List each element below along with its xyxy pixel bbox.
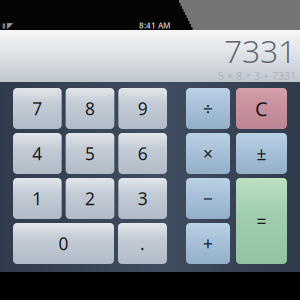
button[interactable]: 4 [13, 133, 62, 174]
button[interactable]: 5 [66, 133, 114, 174]
staticText: 4 [32, 142, 42, 165]
staticText: 9 [138, 97, 148, 120]
staticText: = [256, 209, 266, 232]
staticText: 5 × 8 ÷ 3 + 7331 [218, 68, 296, 83]
staticText: 8 [85, 97, 95, 120]
staticText: 7331 [224, 29, 296, 72]
staticText: + [203, 232, 213, 255]
staticText: ◤ [7, 21, 13, 30]
staticText: 2 [85, 187, 95, 210]
staticText: ÷ [203, 97, 213, 120]
button[interactable]: 1 [13, 178, 62, 219]
button[interactable]: 3 [118, 178, 167, 219]
button[interactable]: 0 [13, 223, 114, 264]
staticText: 5 [85, 142, 95, 165]
button[interactable]: = [236, 178, 287, 264]
button[interactable]: ± [236, 133, 287, 174]
staticText: 8:41 AM [139, 20, 170, 31]
staticText: . [140, 232, 145, 255]
button[interactable]: + [186, 223, 230, 264]
staticText: 7 [32, 97, 42, 120]
button[interactable]: 8 [66, 88, 114, 129]
staticText: ± [256, 142, 266, 165]
button[interactable]: C [236, 88, 287, 129]
button[interactable]: 2 [66, 178, 114, 219]
staticText: − [203, 187, 213, 210]
button[interactable]: 7 [13, 88, 62, 129]
staticText: 6 [138, 142, 148, 165]
staticText: 3 [138, 187, 148, 210]
button[interactable]: ÷ [186, 88, 230, 129]
staticText: × [203, 142, 213, 165]
staticText: C [255, 95, 268, 122]
staticText: 0 [58, 232, 68, 255]
button[interactable]: 9 [118, 88, 167, 129]
button[interactable]: − [186, 178, 230, 219]
button[interactable]: . [118, 223, 167, 264]
button[interactable]: 6 [118, 133, 167, 174]
staticText: 1 [32, 187, 42, 210]
button[interactable]: × [186, 133, 230, 174]
staticText: ▮ [2, 22, 6, 29]
